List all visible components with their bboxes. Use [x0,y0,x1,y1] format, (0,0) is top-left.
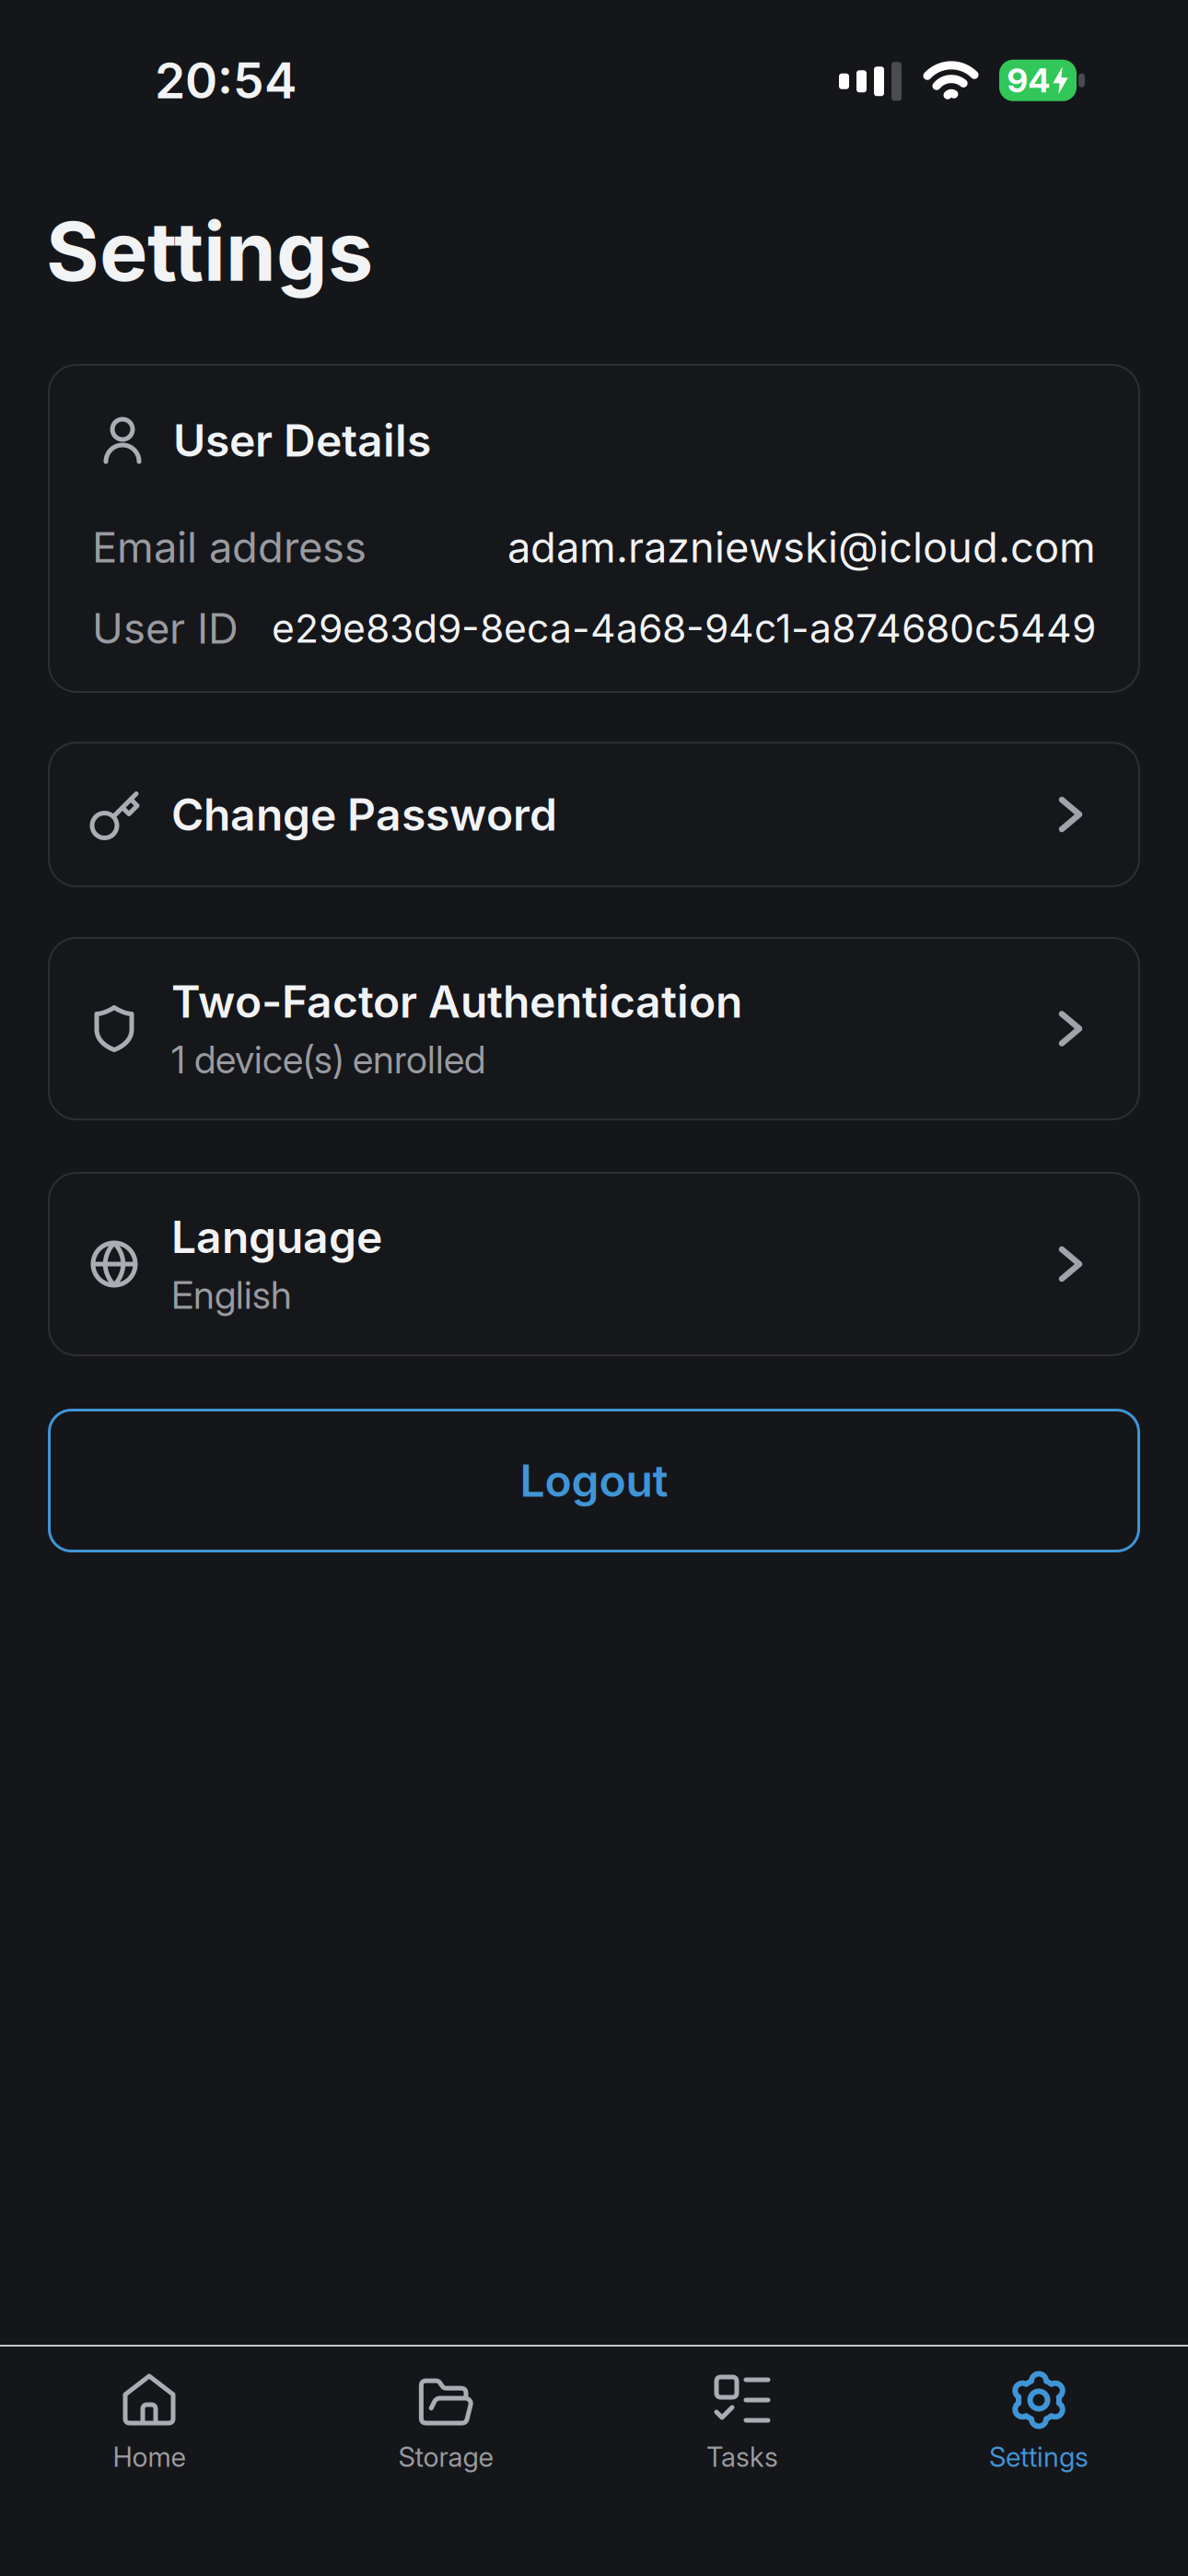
staticText: 20:54 [155,51,297,110]
staticText: Settings [46,202,373,300]
staticText: Home [113,2441,186,2473]
staticText: Storage [398,2441,493,2473]
button[interactable]: Two-Factor Authentication [0,937,1188,1120]
staticText: Change Password [171,788,557,841]
button[interactable]: Storage [297,2371,594,2473]
staticText: User ID [92,603,239,654]
staticText: adam.razniewski@icloud.com [507,522,1096,573]
staticText: Language [171,1210,382,1264]
button[interactable]: Change Password [0,742,1188,887]
button[interactable]: Settings [891,2371,1187,2473]
staticText: Settings [989,2441,1089,2473]
button[interactable]: Tasks [594,2371,891,2473]
staticText: e29e83d9-8eca-4a68-94c1-a874680c5449 [272,605,1096,652]
button[interactable]: Logout [0,1409,1188,1552]
staticText: English [171,1272,292,1318]
staticText: User Details [173,414,431,467]
staticText: Two-Factor Authentication [171,975,742,1028]
button[interactable]: Home [1,2371,297,2473]
staticText: Email address [92,522,367,573]
button[interactable]: Language [0,1172,1188,1356]
staticText: Tasks [706,2441,778,2473]
staticText: Logout [520,1454,668,1507]
staticText: 94 [1007,60,1050,101]
staticText: 1 device(s) enrolled [171,1036,485,1083]
